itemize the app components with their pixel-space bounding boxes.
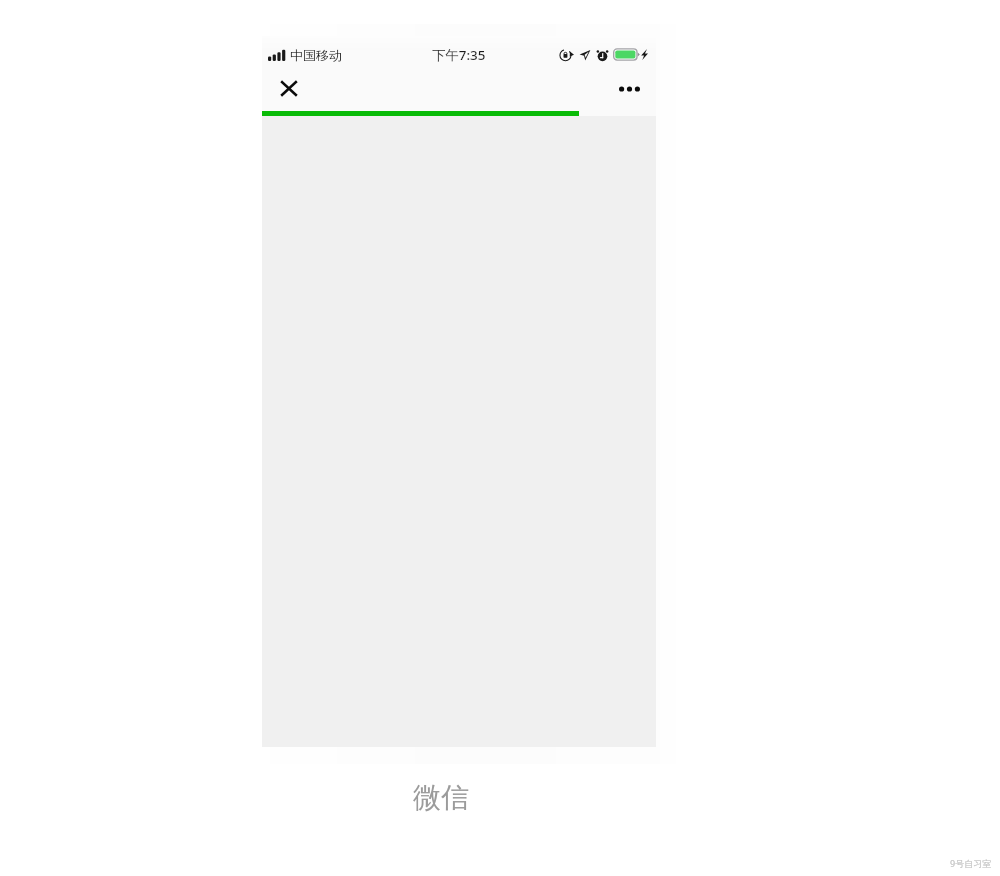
- button[interactable]: Close: [267, 67, 310, 110]
- staticText: 中国移动: [290, 47, 342, 63]
- staticText: 微信: [413, 780, 469, 815]
- staticText: 下午7:35: [432, 46, 486, 64]
- button[interactable]: More options: [608, 67, 651, 110]
- staticText: 9号自习室: [950, 857, 992, 869]
